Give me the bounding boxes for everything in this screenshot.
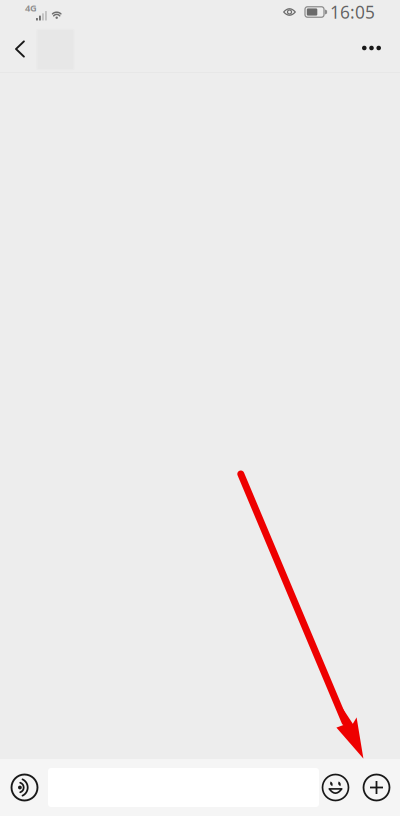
staticText: 4G — [25, 2, 37, 14]
button[interactable]: More — [343, 24, 400, 72]
button[interactable]: Back — [0, 24, 82, 72]
button[interactable]: Voice message — [0, 774, 48, 801]
button[interactable]: Emoji — [319, 774, 363, 801]
staticText: 16:05 — [330, 0, 375, 23]
button[interactable]: More options — [363, 774, 400, 801]
